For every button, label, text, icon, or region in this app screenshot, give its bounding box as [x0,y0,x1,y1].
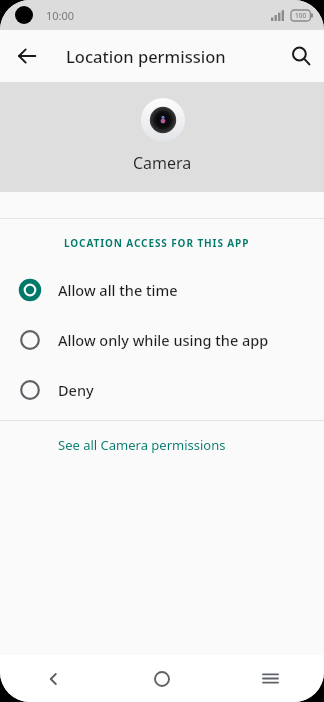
staticText: Location permission [66,45,226,67]
button[interactable]: Deny [0,365,324,415]
staticText: Allow all the time [58,280,178,300]
button[interactable]: Allow all the time [0,265,324,315]
button[interactable]: Recent apps [216,655,324,702]
staticText: Camera [133,152,192,174]
button[interactable]: Search [284,39,318,73]
button[interactable]: See all Camera permissions [0,421,324,469]
staticText: Allow only while using the app [58,330,269,350]
button[interactable]: Back [10,39,44,73]
staticText: LOCATION ACCESS FOR THIS APP [64,236,250,250]
button[interactable]: Home [108,655,216,702]
staticText: See all Camera permissions [58,436,226,454]
staticText: 10:00 [46,8,75,23]
staticText: 100 [295,11,307,20]
button[interactable]: Allow only while using the app [0,315,324,365]
button[interactable]: Back [0,655,108,702]
staticText: Deny [58,380,94,400]
